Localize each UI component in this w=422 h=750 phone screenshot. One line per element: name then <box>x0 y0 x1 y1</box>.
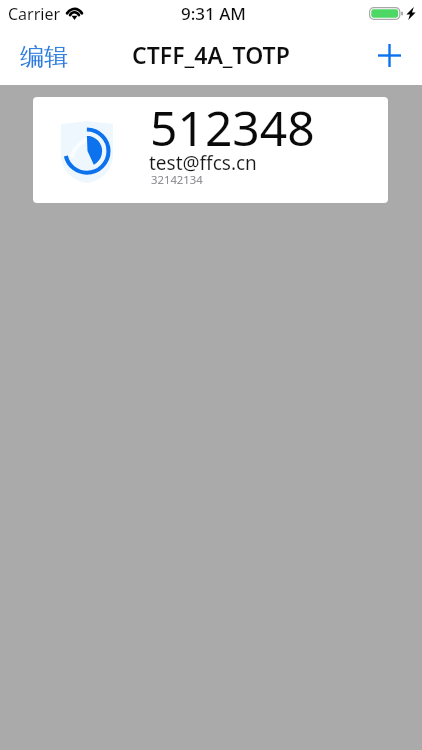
staticText: test@ffcs.cn <box>149 150 257 176</box>
button[interactable]: 512348 <box>33 97 388 203</box>
staticText: 编辑 <box>20 42 68 72</box>
button[interactable]: 编辑 <box>14 38 74 76</box>
staticText: Carrier <box>8 3 61 25</box>
staticText: 512348 <box>150 97 315 160</box>
staticText: 9:31 AM <box>181 2 246 25</box>
staticText: CTFF_4A_TOTP <box>132 39 290 70</box>
button[interactable]: Add <box>372 38 407 73</box>
staticText: 32142134 <box>151 172 203 187</box>
